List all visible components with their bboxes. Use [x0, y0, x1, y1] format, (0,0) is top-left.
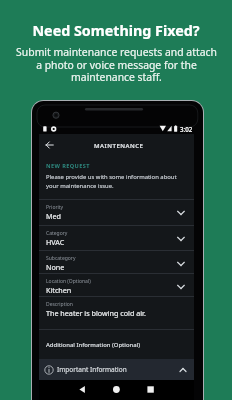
- staticText: 3:02: [180, 125, 193, 133]
- staticText: HVAC: [46, 237, 65, 247]
- staticText: MAINTENANCE: [94, 141, 144, 149]
- button[interactable]: Important Information: [39, 359, 194, 380]
- button[interactable]: Subcategory: [39, 250, 194, 274]
- staticText: Subcategory: [46, 255, 76, 262]
- staticText: NEW REQUEST: [46, 162, 90, 170]
- button[interactable]: Back: [43, 138, 57, 152]
- staticText: Location (Optional): [46, 278, 91, 285]
- staticText: Need Something Fixed?: [32, 21, 200, 40]
- staticText: Category: [46, 230, 68, 237]
- staticText: Additional Information (Optional): [46, 341, 141, 349]
- staticText: Priority: [46, 204, 64, 211]
- button[interactable]: Category: [39, 225, 194, 250]
- other: Collapse: [178, 365, 188, 375]
- staticText: Important Information: [57, 365, 127, 374]
- staticText: Description: [46, 301, 73, 308]
- staticText: The heater is blowing cold air.: [46, 308, 146, 318]
- staticText: Kitchen: [46, 285, 72, 295]
- staticText: None: [46, 262, 65, 272]
- staticText: Med: [46, 211, 61, 221]
- staticText: Submit maintenance requests and attach a…: [16, 45, 217, 84]
- staticText: Please provide us with some information …: [46, 173, 177, 189]
- button[interactable]: Additional Information (Optional): [39, 329, 194, 359]
- button[interactable]: Priority: [39, 199, 194, 225]
- button[interactable]: Location (Optional): [39, 273, 194, 296]
- button[interactable]: Description: [39, 296, 194, 329]
- button[interactable]: Back: [39, 134, 194, 156]
